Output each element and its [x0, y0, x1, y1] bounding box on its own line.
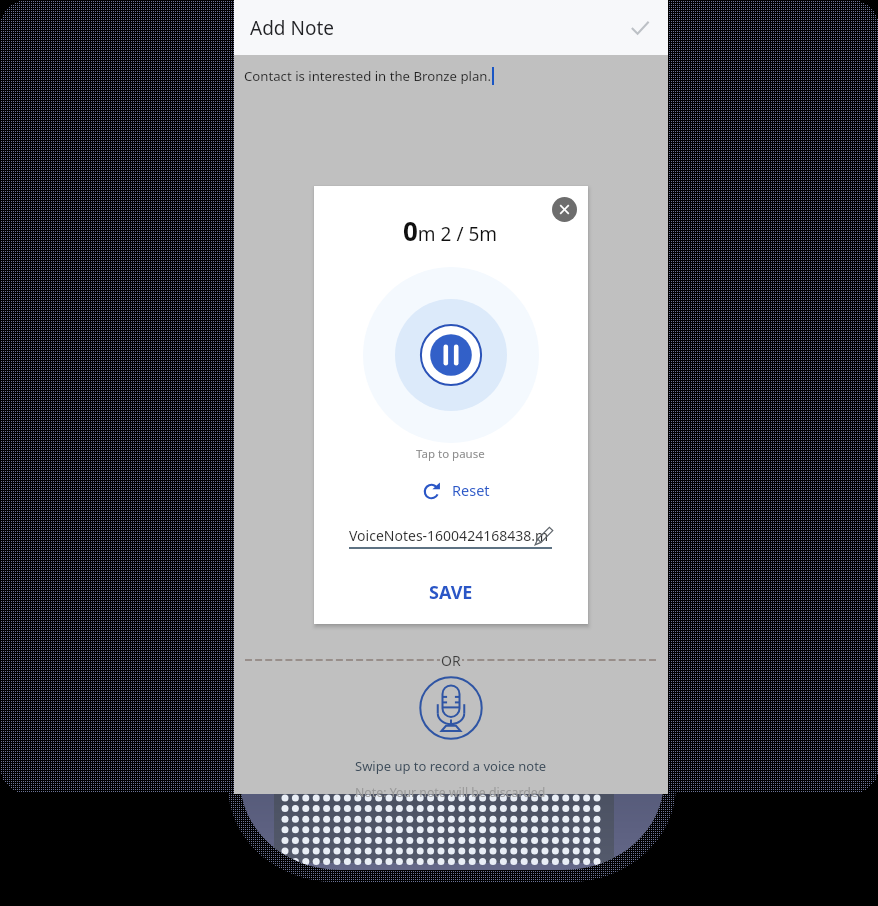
staticText: Add Note: [250, 15, 334, 41]
button[interactable]: Save note: [622, 10, 658, 46]
staticText: Contact is interested in the Bronze plan…: [244, 67, 492, 85]
staticText: VoiceNotes-1600424168438.m: [349, 526, 549, 545]
staticText: Reset: [452, 480, 490, 500]
staticText: Swipe up to record a voice note: [355, 757, 547, 775]
button[interactable]: Reset: [408, 477, 494, 503]
staticText: Note: Your note will be discarded: [355, 784, 546, 801]
button[interactable]: Close: [552, 197, 577, 222]
staticText: SAVE: [429, 580, 473, 605]
button[interactable]: SAVE: [419, 575, 483, 610]
staticText: Tap to pause: [416, 446, 485, 462]
button[interactable]: Edit file name: [533, 526, 554, 547]
button[interactable]: Pause recording: [363, 267, 539, 443]
button[interactable]: Record voice note: [417, 674, 485, 742]
staticText: OR: [441, 651, 461, 670]
staticText: 0m 2 / 5m: [403, 213, 498, 248]
